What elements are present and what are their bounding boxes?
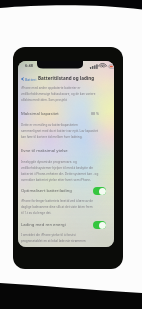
- staticText: Batteritilstand og lading: [38, 75, 95, 81]
- staticText: alfaktra med tiden. Ilars prosjekt: [21, 98, 67, 102]
- button[interactable]: Toggle: [93, 221, 106, 229]
- staticText: kan føre til kortere tid mellom hver lad…: [21, 135, 83, 139]
- staticText: Maksimal kapasitet: [21, 111, 59, 117]
- button[interactable]: Batteri: [20, 75, 38, 83]
- staticText: iPhone forlenger batteriets levetid ved …: [21, 199, 93, 203]
- staticText: Optimalisert batterilading: [21, 188, 72, 194]
- staticText: 88 %: [91, 111, 100, 116]
- button[interactable]: Toggle: [93, 187, 106, 195]
- staticText: batteriet i iPhone-enheten din. Dette sy…: [21, 172, 99, 176]
- staticText: daglige ladevanene dine slik at det sist…: [21, 205, 93, 209]
- staticText: 6:48: [25, 63, 33, 68]
- staticText: I området din iPhone ytelse til å foruts…: [21, 233, 76, 237]
- staticText: iPhone med andre oppdaterte batterier er: [21, 86, 81, 90]
- staticText: Evne til maksimal ytelse: [21, 148, 68, 154]
- staticText: sammenlignet med da et batteri var nytt.…: [21, 129, 99, 133]
- staticText: vedlikeholdssystemer hjelper til med å b…: [21, 166, 94, 170]
- staticText: til 1.t av du lenge det.: [21, 211, 52, 215]
- staticText: overvåker batteriet ytelse etter hvert s…: [21, 178, 92, 182]
- staticText: Dette er en måling av batterikapasiteten: [21, 123, 78, 127]
- staticText: Lading med ren energi: [21, 222, 66, 228]
- staticText: Innebygde dynamiske programvare- og: [21, 160, 77, 164]
- staticText: vedlikeholdsmessige faktauksoare, og de …: [21, 92, 96, 96]
- staticText: Batteri: [25, 77, 37, 82]
- staticText: prognosetablet en at lokal lade når strø…: [21, 239, 86, 243]
